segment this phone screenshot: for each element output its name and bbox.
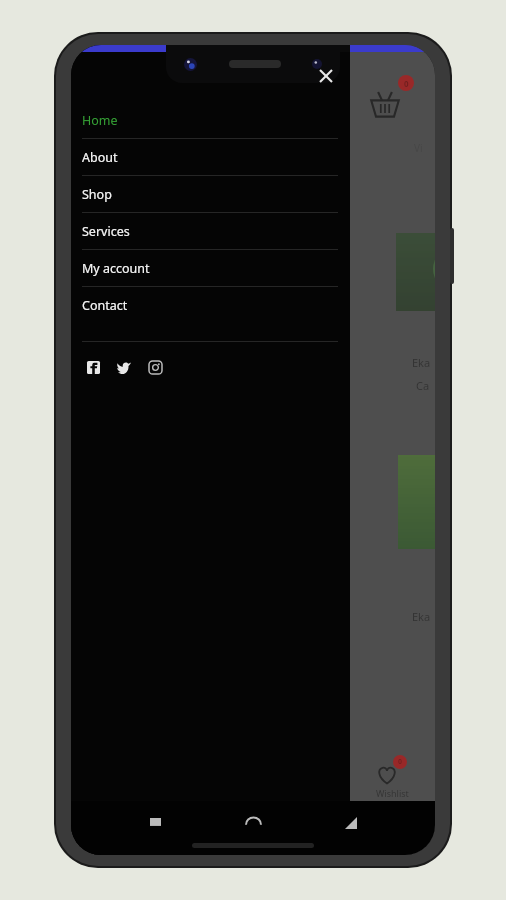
button[interactable]: 0: [350, 755, 434, 799]
button[interactable]: About: [71, 139, 350, 175]
button[interactable]: Close menu: [311, 61, 341, 91]
staticText: Contact: [82, 297, 128, 314]
button[interactable]: Shop: [71, 176, 350, 212]
button[interactable]: Instagram: [144, 356, 166, 378]
staticText: Eka: [412, 609, 431, 624]
button[interactable]: Twitter: [113, 356, 135, 378]
button[interactable]: Facebook: [82, 356, 104, 378]
staticText: Shop: [82, 186, 112, 203]
staticText: Services: [82, 223, 130, 240]
staticText: 0: [404, 78, 409, 89]
staticText: Home: [82, 112, 118, 129]
button[interactable]: My account: [71, 250, 350, 286]
staticText: Wishlist: [376, 787, 409, 799]
button[interactable]: Home: [71, 102, 350, 138]
staticText: Eka: [412, 355, 431, 370]
button[interactable]: Home: [239, 809, 267, 837]
button[interactable]: Recent apps: [141, 809, 169, 837]
button[interactable]: Services: [71, 213, 350, 249]
button[interactable]: Contact: [71, 287, 350, 323]
staticText: Ca: [416, 378, 430, 393]
button[interactable]: Back: [337, 809, 365, 837]
staticText: About: [82, 149, 118, 166]
staticText: My account: [82, 260, 150, 277]
staticText: 0: [398, 757, 403, 767]
